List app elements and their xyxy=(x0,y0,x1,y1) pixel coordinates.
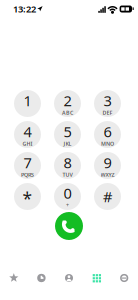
button[interactable]: Contacts xyxy=(55,264,83,292)
staticText: # xyxy=(103,187,112,206)
button[interactable]: * xyxy=(14,183,41,210)
staticText: 7 xyxy=(23,153,31,172)
staticText: MNO xyxy=(101,140,114,147)
staticText: 1 xyxy=(23,91,31,110)
staticText: JKL xyxy=(63,140,71,147)
button[interactable]: 8 xyxy=(54,152,81,179)
button[interactable]: 6 xyxy=(94,121,121,148)
button[interactable]: 7 xyxy=(14,152,41,179)
staticText: 5 xyxy=(63,122,71,141)
button[interactable]: Keypad xyxy=(83,264,110,292)
button[interactable]: 0 xyxy=(54,183,81,210)
button[interactable]: 3 xyxy=(94,90,121,117)
button[interactable]: 4 xyxy=(14,121,41,148)
staticText: PQRS xyxy=(21,171,34,178)
staticText: 6 xyxy=(103,122,111,141)
button[interactable]: # xyxy=(94,183,121,210)
staticText: 3 xyxy=(103,91,111,110)
staticText: + xyxy=(66,202,69,209)
staticText: 2 xyxy=(63,91,71,110)
staticText: GHI xyxy=(22,140,32,147)
staticText: 13:22 xyxy=(13,3,36,15)
staticText: ABC xyxy=(62,109,73,116)
staticText: 9 xyxy=(103,153,111,172)
button[interactable]: 1 xyxy=(14,90,41,117)
staticText: * xyxy=(22,187,32,210)
staticText: WXYZ xyxy=(100,171,114,178)
button[interactable]: 2 xyxy=(54,90,81,117)
button[interactable]: Favorites xyxy=(0,264,28,292)
button[interactable]: Voicemail xyxy=(110,264,138,292)
staticText: 8 xyxy=(63,153,71,172)
staticText: 4 xyxy=(23,122,31,141)
staticText: 0 xyxy=(63,183,71,203)
staticText: TUV xyxy=(62,171,72,178)
button[interactable]: Call xyxy=(55,212,83,240)
button[interactable]: 9 xyxy=(94,152,121,179)
button[interactable]: 5 xyxy=(54,121,81,148)
button[interactable]: Recents xyxy=(28,264,55,292)
staticText: DEF xyxy=(102,109,112,116)
